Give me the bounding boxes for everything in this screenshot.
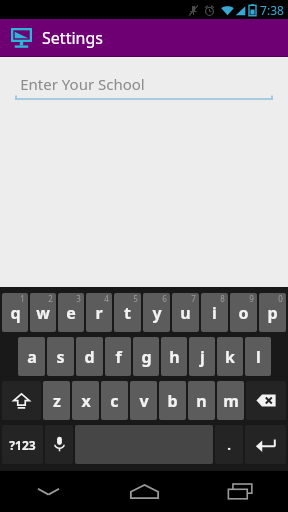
staticText: 7 [191, 293, 196, 304]
staticText: g [141, 346, 152, 368]
staticText: p [267, 302, 278, 324]
button[interactable]: i [201, 293, 228, 332]
button[interactable]: n [188, 381, 215, 420]
staticText: a [27, 346, 37, 368]
staticText: r [95, 302, 103, 324]
button[interactable]: p [259, 293, 286, 332]
staticText: 7:38 [260, 2, 284, 18]
staticText: e [66, 302, 76, 324]
button[interactable]: h [161, 337, 187, 376]
staticText: t [124, 302, 131, 324]
button[interactable]: . [215, 425, 243, 464]
button[interactable]: k [217, 337, 243, 376]
button[interactable]: m [217, 381, 244, 420]
button[interactable]: f [105, 337, 131, 376]
button[interactable]: Hide keyboard [0, 471, 96, 512]
staticText: 6 [162, 293, 167, 304]
button[interactable]: r [86, 293, 112, 332]
staticText: 4 [104, 293, 109, 304]
button[interactable]: u [172, 293, 199, 332]
button[interactable]: v [130, 381, 157, 420]
staticText: 8 [220, 293, 225, 304]
staticText: . [227, 436, 231, 454]
button[interactable]: y [143, 293, 170, 332]
staticText: 1 [20, 293, 25, 304]
staticText: Enter Your School [20, 74, 145, 94]
button[interactable]: Enter [245, 425, 286, 464]
button[interactable]: o [230, 293, 257, 332]
staticText: q [10, 302, 21, 324]
staticText: d [84, 346, 95, 368]
staticText: k [225, 346, 235, 368]
staticText: x [81, 390, 91, 412]
staticText: o [238, 302, 249, 324]
button[interactable]: a [18, 337, 45, 376]
staticText: i [212, 302, 217, 324]
button[interactable]: w [30, 293, 56, 332]
button[interactable]: z [43, 381, 70, 420]
button[interactable]: q [2, 293, 28, 332]
staticText: l [256, 346, 261, 368]
staticText: Settings [42, 27, 103, 49]
button[interactable]: e [58, 293, 84, 332]
button[interactable]: Backspace [246, 381, 286, 420]
button[interactable]: Enter Your School [15, 74, 273, 101]
button[interactable]: c [101, 381, 128, 420]
button[interactable]: l [245, 337, 271, 376]
staticText: w [36, 302, 50, 324]
staticText: f [115, 346, 122, 368]
button[interactable]: g [133, 337, 159, 376]
button[interactable]: s [47, 337, 74, 376]
staticText: ?123 [9, 437, 36, 453]
staticText: j [200, 346, 205, 368]
button[interactable]: x [72, 381, 99, 420]
button[interactable]: Shift [2, 381, 41, 420]
button[interactable]: j [189, 337, 215, 376]
button[interactable]: ?123 [2, 425, 43, 464]
staticText: z [53, 390, 61, 412]
staticText: y [152, 302, 162, 324]
staticText: s [56, 346, 65, 368]
staticText: n [196, 390, 207, 412]
staticText: 5 [133, 293, 138, 304]
staticText: v [139, 390, 149, 412]
staticText: 2 [48, 293, 53, 304]
staticText: 0 [278, 293, 283, 304]
staticText: m [223, 390, 239, 412]
staticText: 3 [76, 293, 81, 304]
staticText: u [180, 302, 191, 324]
button[interactable]: Voice input [45, 425, 73, 464]
staticText: c [110, 390, 119, 412]
button[interactable]: d [76, 337, 103, 376]
button[interactable]: b [159, 381, 186, 420]
button[interactable]: Recents [192, 471, 288, 512]
button[interactable]: Home [96, 471, 192, 512]
staticText: h [169, 346, 180, 368]
staticText: b [167, 390, 178, 412]
staticText: 9 [249, 293, 254, 304]
button[interactable]: t [114, 293, 141, 332]
